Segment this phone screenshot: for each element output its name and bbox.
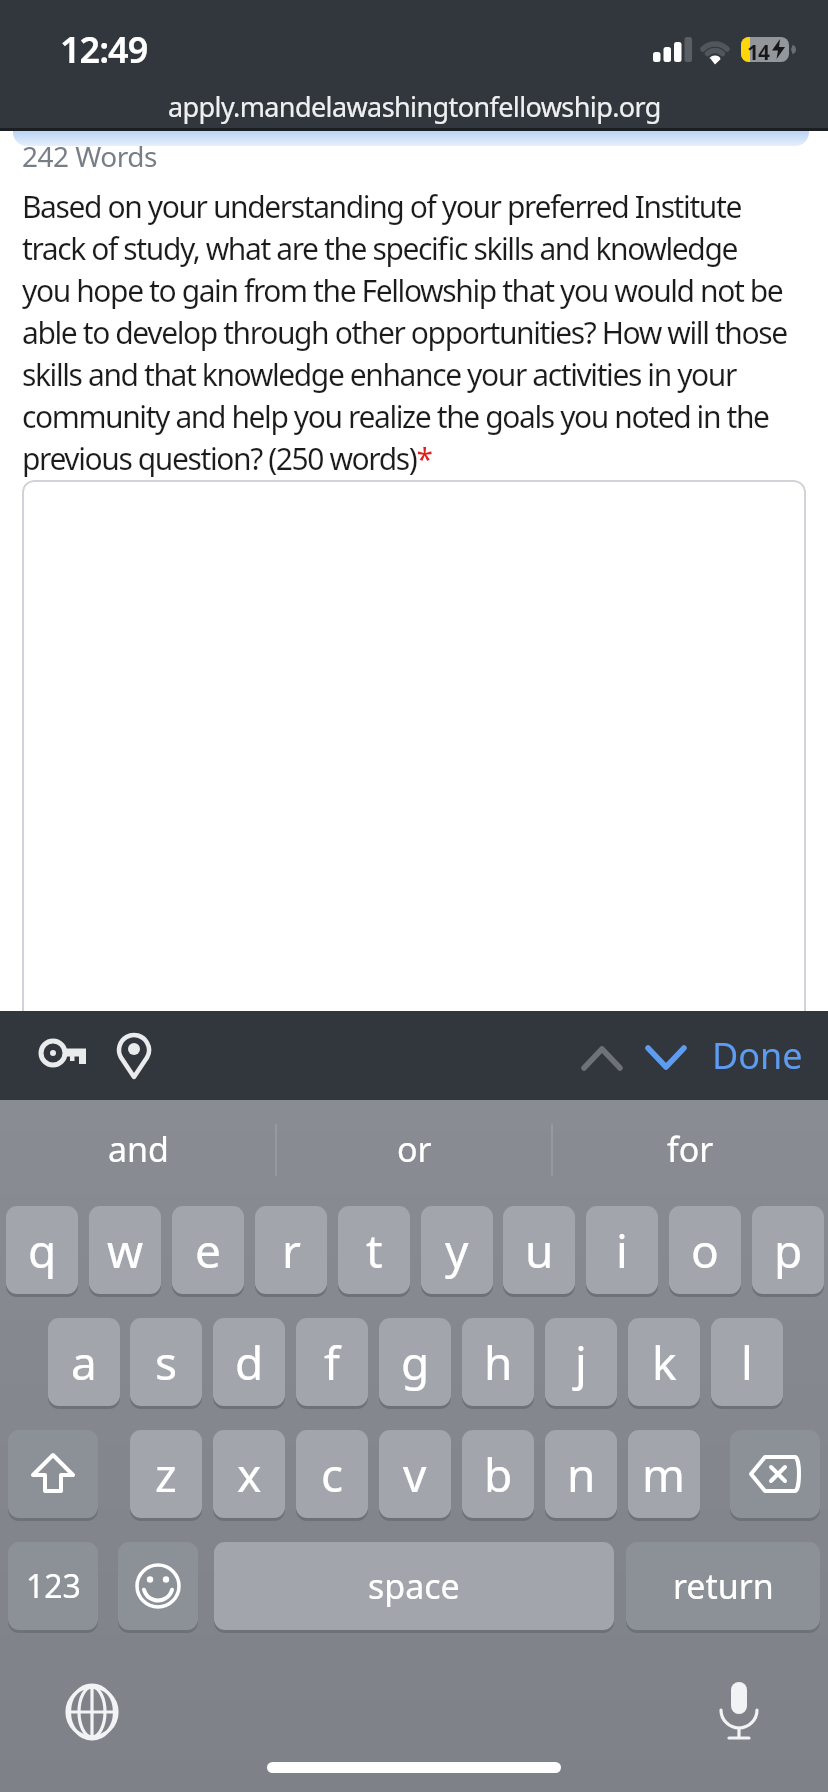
staticText: you hope to gain from the Fellowship tha… xyxy=(22,270,783,311)
button[interactable]: t xyxy=(338,1206,410,1294)
button[interactable]: b xyxy=(462,1430,534,1518)
staticText: 14 xyxy=(747,38,770,67)
button[interactable] xyxy=(8,1430,98,1518)
staticText: d xyxy=(235,1331,264,1394)
staticText: c xyxy=(321,1443,344,1506)
staticText: j xyxy=(575,1331,587,1394)
button[interactable]: w xyxy=(89,1206,161,1294)
staticText: g xyxy=(401,1331,430,1394)
button[interactable] xyxy=(118,1542,198,1630)
button[interactable]: g xyxy=(379,1318,451,1406)
button[interactable]: n xyxy=(545,1430,617,1518)
button[interactable] xyxy=(632,1029,696,1083)
button[interactable]: y xyxy=(421,1206,493,1294)
staticText: return xyxy=(673,1563,774,1609)
staticText: track of study, what are the specific sk… xyxy=(22,228,737,269)
button[interactable]: for xyxy=(552,1100,828,1198)
staticText: m xyxy=(642,1443,686,1506)
staticText: apply.mandelawashingtonfellowship.org xyxy=(168,88,661,125)
button[interactable] xyxy=(22,480,806,1060)
staticText: or xyxy=(397,1126,432,1172)
staticText: r xyxy=(282,1219,301,1282)
button[interactable]: space xyxy=(214,1542,614,1630)
button[interactable] xyxy=(30,1031,98,1081)
button[interactable]: f xyxy=(296,1318,368,1406)
button[interactable]: q xyxy=(6,1206,78,1294)
button[interactable]: i xyxy=(586,1206,658,1294)
staticText: Done xyxy=(712,1031,803,1080)
button[interactable]: u xyxy=(503,1206,575,1294)
button[interactable]: k xyxy=(628,1318,700,1406)
staticText: e xyxy=(195,1219,221,1282)
staticText: 242 Words xyxy=(22,137,157,175)
button[interactable]: m xyxy=(628,1430,700,1518)
button[interactable]: a xyxy=(48,1318,120,1406)
button[interactable]: e xyxy=(172,1206,244,1294)
staticText: space xyxy=(368,1563,460,1609)
button[interactable] xyxy=(108,1026,162,1086)
staticText: z xyxy=(155,1443,177,1506)
button[interactable]: 123 xyxy=(8,1542,98,1630)
button[interactable]: l xyxy=(711,1318,783,1406)
staticText: community and help you realize the goals… xyxy=(22,396,769,437)
staticText: and xyxy=(108,1126,169,1172)
staticText: a xyxy=(71,1331,97,1394)
button[interactable]: j xyxy=(545,1318,617,1406)
staticText: o xyxy=(691,1219,719,1282)
button[interactable]: v xyxy=(379,1430,451,1518)
staticText: y xyxy=(445,1219,469,1282)
staticText: n xyxy=(567,1443,596,1506)
button[interactable]: Done xyxy=(700,1023,815,1087)
staticText: 123 xyxy=(26,1564,81,1608)
staticText: s xyxy=(155,1331,178,1394)
button[interactable]: apply.mandelawashingtonfellowship.org xyxy=(0,88,828,125)
staticText: f xyxy=(324,1331,340,1394)
staticText: b xyxy=(484,1443,513,1506)
button[interactable]: return xyxy=(626,1542,820,1630)
button[interactable]: or xyxy=(276,1100,552,1198)
button[interactable]: and xyxy=(0,1100,276,1198)
staticText: i xyxy=(616,1219,628,1282)
button[interactable]: h xyxy=(462,1318,534,1406)
button[interactable] xyxy=(730,1430,820,1518)
button[interactable]: x xyxy=(213,1430,285,1518)
staticText: p xyxy=(774,1219,803,1282)
button[interactable] xyxy=(57,1678,125,1746)
staticText: h xyxy=(484,1331,513,1394)
button[interactable]: z xyxy=(130,1430,202,1518)
staticText: l xyxy=(741,1331,753,1394)
button[interactable]: o xyxy=(669,1206,741,1294)
button[interactable]: s xyxy=(130,1318,202,1406)
staticText: 12:49 xyxy=(60,25,148,74)
staticText: u xyxy=(525,1219,554,1282)
staticText: t xyxy=(366,1219,383,1282)
staticText: q xyxy=(28,1219,57,1282)
staticText: for xyxy=(667,1126,714,1172)
staticText: previous question? (250 words)* xyxy=(22,438,432,479)
staticText: v xyxy=(403,1443,427,1506)
button[interactable] xyxy=(705,1676,771,1746)
button[interactable] xyxy=(568,1029,632,1083)
staticText: w xyxy=(107,1219,144,1282)
staticText: x xyxy=(237,1443,262,1506)
button[interactable]: d xyxy=(213,1318,285,1406)
button[interactable]: p xyxy=(752,1206,824,1294)
staticText: able to develop through other opportunit… xyxy=(22,312,787,353)
button[interactable]: r xyxy=(255,1206,327,1294)
staticText: k xyxy=(652,1331,677,1394)
staticText: Based on your understanding of your pref… xyxy=(22,186,741,227)
button[interactable]: c xyxy=(296,1430,368,1518)
staticText: skills and that knowledge enhance your a… xyxy=(22,354,736,395)
